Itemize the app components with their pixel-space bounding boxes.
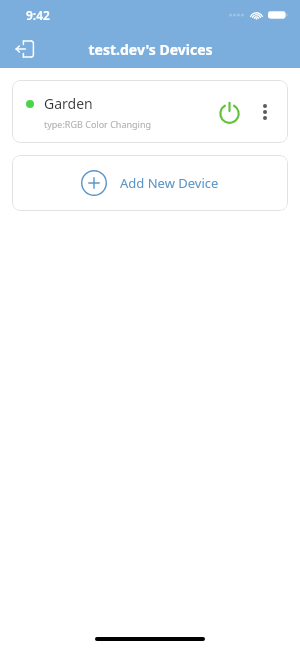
- button[interactable]: More options: [252, 99, 278, 125]
- staticText: test.dev's Devices: [88, 40, 213, 59]
- staticText: type:RGB Color Changing: [44, 118, 151, 130]
- button[interactable]: Garden: [12, 80, 288, 143]
- staticText: Garden: [44, 94, 93, 113]
- button[interactable]: Toggle power: [212, 95, 246, 129]
- staticText: 9:42: [26, 7, 50, 23]
- button[interactable]: Add New Device: [12, 155, 288, 211]
- button[interactable]: Logout: [8, 32, 42, 66]
- staticText: Add New Device: [120, 174, 219, 192]
